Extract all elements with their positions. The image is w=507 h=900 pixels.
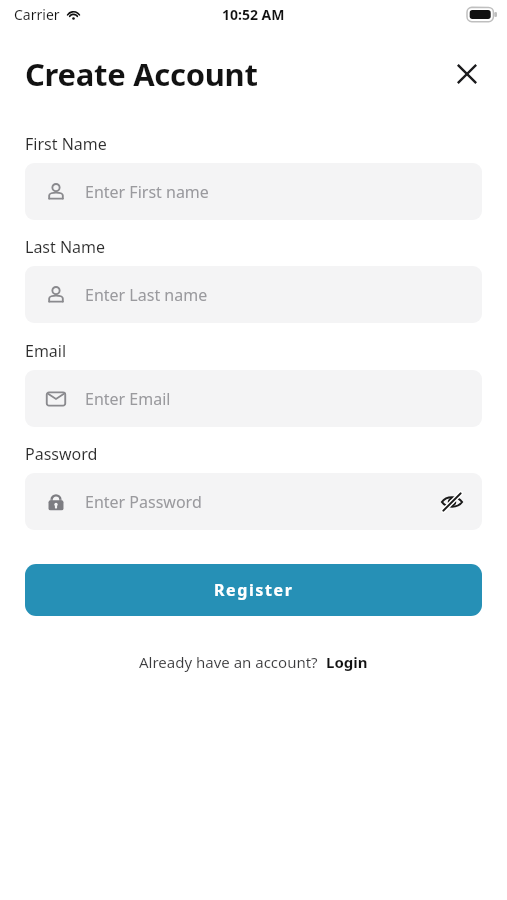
staticText: First Name <box>25 133 107 155</box>
button[interactable]: Enter First name <box>25 163 482 220</box>
button[interactable]: Show password <box>432 482 472 522</box>
staticText: Password <box>25 443 98 465</box>
button[interactable]: Close <box>445 52 489 96</box>
staticText: Enter First name <box>85 181 209 203</box>
staticText: Enter Email <box>85 388 171 410</box>
button[interactable]: Enter Last name <box>25 266 482 323</box>
staticText: Register <box>214 579 294 601</box>
staticText: 10:52 AM <box>222 5 285 24</box>
button[interactable]: Login <box>326 652 368 672</box>
staticText: Enter Password <box>85 491 202 513</box>
button[interactable]: Enter Email <box>25 370 482 427</box>
button[interactable]: Register <box>25 564 482 616</box>
staticText: Email <box>25 340 67 362</box>
staticText: Last Name <box>25 236 106 258</box>
staticText: Create Account <box>25 53 258 95</box>
staticText: Login <box>326 652 368 672</box>
staticText: Already have an account? <box>139 652 318 672</box>
staticText: Enter Last name <box>85 284 208 306</box>
button[interactable]: Enter Password <box>25 473 482 530</box>
staticText: Carrier <box>14 5 60 24</box>
